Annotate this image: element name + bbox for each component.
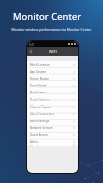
- staticText: Mesh Location: [30, 63, 50, 67]
- button[interactable]: Mesh Location: [27, 61, 78, 68]
- staticText: Monitor wireless performance via Monitor…: [0, 27, 103, 32]
- staticText: WIFI: [49, 49, 57, 54]
- button[interactable]: Guest Access: [27, 131, 78, 138]
- staticText: Mesh Parameters: [30, 112, 54, 116]
- button[interactable]: About: [27, 145, 78, 146]
- staticText: App Degree: [30, 70, 47, 74]
- button[interactable]: Mesh Settings: [27, 117, 78, 124]
- staticText: Node Statistics: [30, 98, 51, 102]
- staticText: Channel Report: [30, 105, 52, 109]
- button[interactable]: Node Status: [27, 89, 78, 96]
- staticText: About: [30, 145, 39, 146]
- button[interactable]: Alerts: [27, 138, 78, 145]
- staticText: Node Status: [30, 91, 47, 95]
- staticText: 9:41: [29, 43, 35, 47]
- staticText: Alerts: [30, 140, 38, 144]
- button[interactable]: Network Version: [27, 124, 78, 131]
- staticText: Monitor Center: [13, 10, 82, 23]
- button[interactable]: Device Region: [27, 75, 78, 82]
- button[interactable]: Back: [27, 47, 34, 56]
- staticText: Device Region: [30, 77, 50, 81]
- staticText: Mesh Settings: [30, 119, 50, 123]
- button[interactable]: App Degree: [27, 68, 78, 75]
- staticText: Network Version: [30, 126, 53, 130]
- button[interactable]: Node Statistics: [27, 96, 78, 103]
- button[interactable]: Channel Report: [27, 103, 78, 110]
- button[interactable]: Time Period: [27, 82, 78, 89]
- staticText: Guest Access: [30, 133, 48, 137]
- button[interactable]: Mesh Parameters: [27, 110, 78, 117]
- staticText: Time Period: [30, 84, 47, 88]
